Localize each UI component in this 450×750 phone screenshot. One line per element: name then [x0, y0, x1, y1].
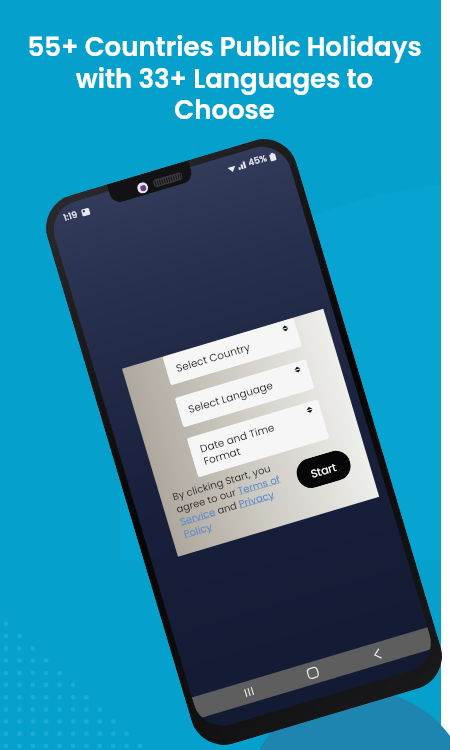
staticText: 1:19	[62, 208, 80, 225]
button[interactable]: Home	[299, 659, 327, 687]
button[interactable]: Select Language	[174, 359, 315, 428]
button[interactable]: Start	[293, 447, 354, 492]
staticText: 55+ Countries Public Holidays with 33+ L…	[0, 29, 449, 128]
button[interactable]: Back	[363, 640, 391, 667]
staticText: 45%	[247, 152, 269, 170]
button[interactable]: Recents	[235, 678, 262, 706]
staticText: Start	[309, 459, 339, 481]
staticText: Date and Time Format	[198, 420, 280, 468]
staticText: Select Language	[186, 378, 275, 417]
button[interactable]: Select Country	[162, 318, 302, 386]
button[interactable]: Date and Time Format	[186, 399, 329, 477]
button[interactable]: By clicking Start, you agree to our Term…	[171, 458, 293, 541]
staticText: Select Country	[174, 340, 252, 376]
